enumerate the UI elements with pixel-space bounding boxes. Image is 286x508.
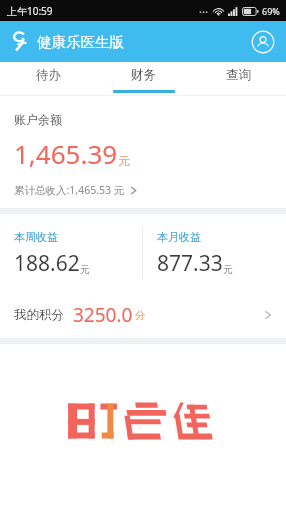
staticText: 累计总收入:1,465.53 元 (14, 183, 125, 197)
staticText: 元 (80, 263, 90, 276)
staticText: 1,465.39 (14, 136, 118, 171)
staticText: 188.62 (14, 249, 80, 278)
staticText: 我的积分 (14, 307, 64, 323)
staticText: 元 (223, 263, 233, 276)
staticText: 查询 (226, 67, 251, 83)
staticText: 健康乐医生版 (37, 33, 124, 51)
button[interactable]: 累计总收入:1,465.53 元 (14, 183, 137, 197)
staticText: 69% (262, 5, 280, 17)
button[interactable]: 财务 (96, 62, 191, 95)
staticText: 元 (118, 153, 130, 168)
button[interactable]: 本月收益 (143, 214, 286, 292)
staticText: 877.33 (157, 249, 223, 278)
staticText: 本周收益 (14, 230, 58, 244)
button[interactable]: 待办 (0, 62, 96, 95)
button[interactable]: 我的积分 (0, 292, 286, 338)
button[interactable]: 查询 (191, 62, 286, 95)
staticText: 账户余额 (14, 112, 62, 127)
staticText: 本月收益 (157, 230, 201, 244)
staticText: 上午10:59 (7, 4, 53, 18)
button[interactable]: 本周收益 (0, 214, 142, 292)
staticText: 分 (135, 309, 146, 322)
staticText: 待办 (36, 67, 61, 83)
staticText: 3250.0 (73, 302, 133, 328)
button[interactable]: Account (250, 29, 276, 55)
staticText: 财务 (131, 67, 156, 83)
